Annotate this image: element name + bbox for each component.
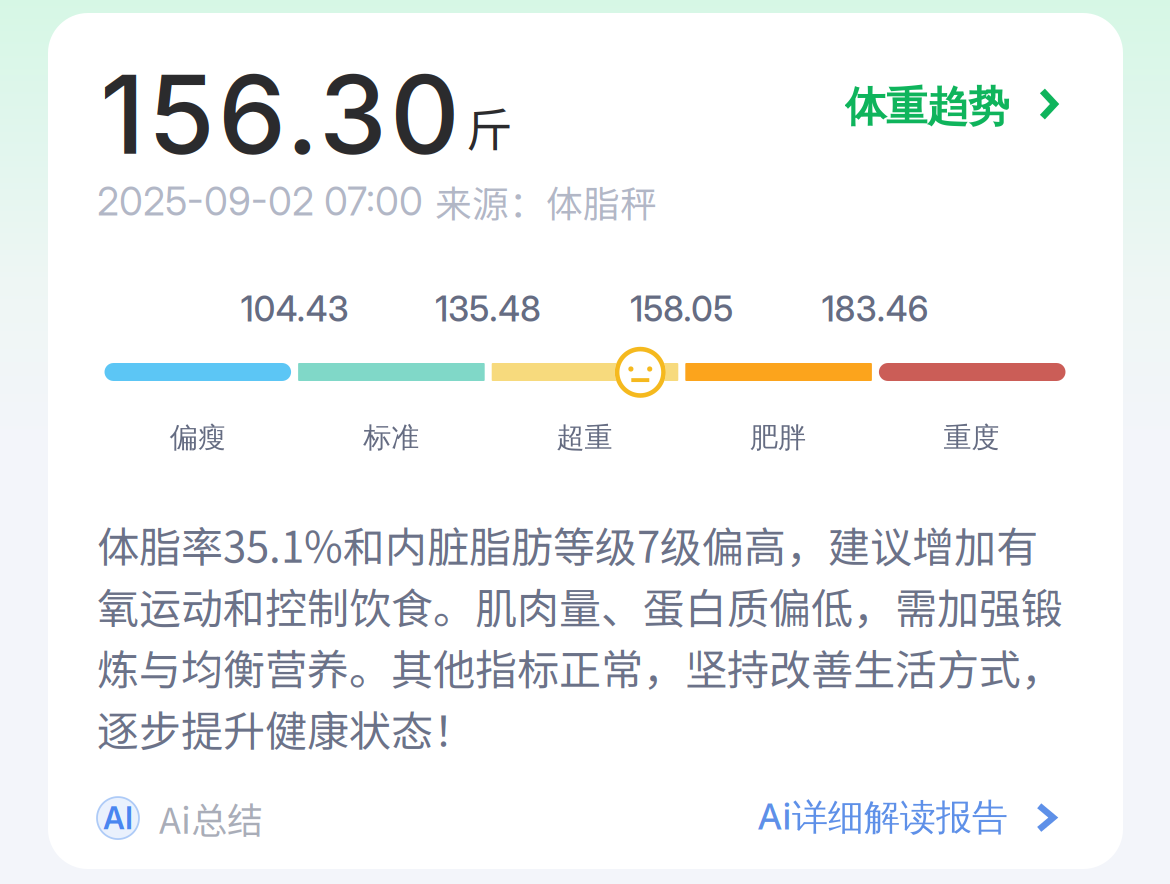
staticText: Ai总结 <box>159 792 263 844</box>
staticText: 来源：体脂秤 <box>435 175 657 228</box>
button[interactable]: 体重趋势 <box>833 69 1070 145</box>
staticText: 斤 <box>466 93 513 161</box>
button[interactable]: Ai详细解读报告 <box>758 791 1056 840</box>
staticText: 135.48 <box>435 288 541 330</box>
staticText: 104.43 <box>240 288 348 330</box>
staticText: 158.05 <box>630 288 733 330</box>
staticText: 重度 <box>943 420 999 455</box>
staticText: 超重 <box>557 420 613 455</box>
staticText: 156.30 <box>100 49 460 180</box>
staticText: 2025-09-02 07:00 <box>97 178 423 225</box>
staticText: 标准 <box>363 420 419 455</box>
staticText: AI <box>103 799 133 837</box>
staticText: 体脂率35.1%和内脏脂肪等级7级偏高，建议增加有氧运动和控制饮食。肌肉量、蛋白… <box>97 514 1063 759</box>
staticText: 肥胖 <box>750 420 806 455</box>
staticText: Ai详细解读报告 <box>758 791 1008 840</box>
staticText: 体重趋势 <box>845 81 1009 133</box>
button[interactable]: AI <box>97 792 263 844</box>
staticText: 偏瘦 <box>170 420 226 455</box>
staticText: 183.46 <box>821 288 928 330</box>
